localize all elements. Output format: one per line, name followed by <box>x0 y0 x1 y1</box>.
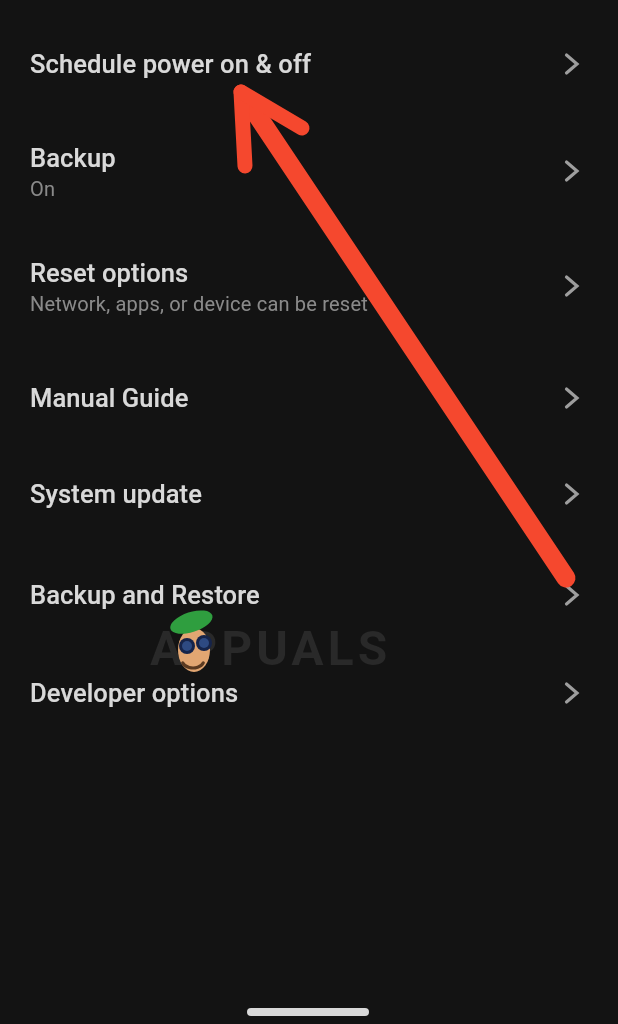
button[interactable]: Developer options <box>0 643 618 743</box>
staticText: Reset options <box>30 258 189 288</box>
staticText: Schedule power on & off <box>30 49 312 79</box>
button[interactable]: Schedule power on & off <box>0 14 618 114</box>
button[interactable]: Backup <box>0 121 618 221</box>
staticText: Developer options <box>30 678 239 708</box>
button[interactable]: System update <box>0 444 618 544</box>
staticText: System update <box>30 479 202 509</box>
button[interactable]: Reset options <box>0 236 618 336</box>
staticText: Backup <box>30 143 116 173</box>
staticText: On <box>30 177 56 200</box>
staticText: Network, apps, or device can be reset <box>30 292 368 315</box>
staticText: Backup and Restore <box>30 580 260 610</box>
staticText: APPUALS <box>150 620 392 676</box>
staticText: Manual Guide <box>30 383 189 413</box>
button[interactable]: Backup and Restore <box>0 545 618 645</box>
button[interactable]: Manual Guide <box>0 348 618 448</box>
